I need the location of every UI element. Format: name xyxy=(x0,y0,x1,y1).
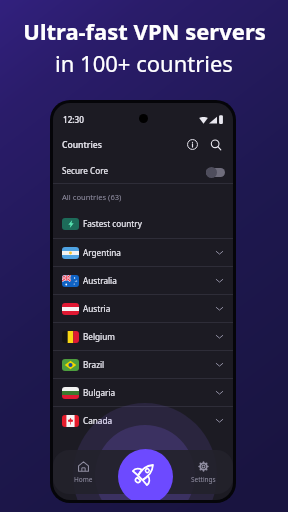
button[interactable]: Search xyxy=(206,135,225,154)
staticText: Fastest country xyxy=(83,218,142,229)
staticText: Secure Core xyxy=(62,165,109,176)
button[interactable]: Home xyxy=(53,450,113,494)
staticText: 12:30 xyxy=(63,114,84,125)
staticText: Canada xyxy=(83,415,113,426)
staticText: Countries xyxy=(62,139,102,151)
staticText: in 100+ countries xyxy=(55,48,233,78)
staticText: Austria xyxy=(83,303,111,314)
staticText: Australia xyxy=(83,275,117,286)
staticText: Home xyxy=(74,475,93,484)
button[interactable]: Settings xyxy=(173,450,233,494)
button[interactable]: Secure Core toggle xyxy=(206,166,225,178)
staticText: All countries (63) xyxy=(62,192,122,202)
button[interactable]: Info xyxy=(183,135,202,154)
staticText: Bulgaria xyxy=(83,387,116,398)
button[interactable]: Bulgaria xyxy=(53,379,233,406)
button[interactable]: Fastest country xyxy=(53,209,233,238)
button[interactable]: Austria xyxy=(53,295,233,322)
button[interactable]: Canada xyxy=(53,407,233,434)
button[interactable]: Connect xyxy=(118,449,173,500)
button[interactable]: Secure Core xyxy=(53,158,233,183)
staticText: Ultra-fast VPN servers xyxy=(23,16,266,46)
button[interactable]: Brazil xyxy=(53,351,233,378)
staticText: Belgium xyxy=(83,331,115,342)
staticText: Settings xyxy=(191,475,216,484)
staticText: Argentina xyxy=(83,247,121,258)
button[interactable]: Australia xyxy=(53,267,233,294)
staticText: Brazil xyxy=(83,359,105,370)
button[interactable]: Belgium xyxy=(53,323,233,350)
button[interactable]: Argentina xyxy=(53,239,233,266)
